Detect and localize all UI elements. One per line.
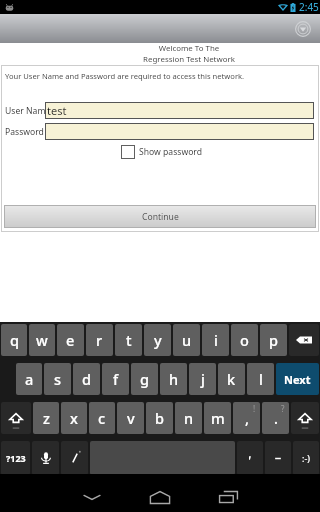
button[interactable]: w <box>29 324 55 356</box>
staticText: l <box>259 369 263 389</box>
button[interactable]: f <box>102 363 129 395</box>
staticText: Password <box>5 126 44 138</box>
staticText: ?123 <box>6 452 26 464</box>
staticText: 2:45 <box>299 0 319 14</box>
button[interactable]: More options <box>295 21 311 37</box>
staticText: test <box>47 103 67 118</box>
staticText: User Name <box>5 105 45 117</box>
button[interactable]: s <box>44 363 71 395</box>
staticText: p <box>269 330 278 350</box>
button[interactable]: Continue <box>4 205 316 228</box>
button[interactable]: y <box>144 324 171 356</box>
staticText: x <box>70 408 78 428</box>
button[interactable]: :-) <box>293 441 319 475</box>
staticText: r <box>96 330 103 350</box>
button[interactable]: Minus <box>265 441 291 475</box>
staticText: m <box>211 408 225 428</box>
button[interactable] <box>45 123 314 140</box>
staticText: Your User Name and Password are required… <box>5 71 245 81</box>
button[interactable]: n <box>175 402 202 434</box>
staticText: h <box>169 369 179 389</box>
button[interactable]: l <box>247 363 274 395</box>
button[interactable]: Back <box>68 474 116 512</box>
button[interactable]: m <box>204 402 231 434</box>
staticText: f <box>113 369 119 389</box>
button[interactable]: Space <box>90 441 235 475</box>
button[interactable]: Shift <box>291 402 319 434</box>
staticText: n <box>184 408 194 428</box>
button[interactable]: t <box>115 324 142 356</box>
button[interactable]: h <box>160 363 187 395</box>
button[interactable]: Backspace <box>289 324 319 356</box>
button[interactable]: ? <box>262 402 289 434</box>
staticText: e <box>66 330 75 350</box>
staticText: d <box>82 369 91 389</box>
staticText: y <box>154 330 162 350</box>
button[interactable]: Shift <box>1 402 31 434</box>
button[interactable]: Show password <box>121 145 203 159</box>
button[interactable]: Voice input <box>32 441 59 475</box>
staticText: ? <box>281 403 285 414</box>
button[interactable]: o <box>231 324 258 356</box>
button[interactable]: c <box>89 402 115 434</box>
staticText: Continue <box>142 211 179 223</box>
button[interactable]: j <box>189 363 216 395</box>
staticText: Show password <box>139 146 203 158</box>
staticText: Welcome To The Regression Test Network <box>143 43 235 65</box>
button[interactable]: g <box>131 363 158 395</box>
button[interactable]: v <box>117 402 144 434</box>
button[interactable]: Slash <box>61 441 88 475</box>
staticText: c <box>98 408 106 428</box>
button[interactable]: Recent apps <box>204 474 252 512</box>
staticText: t <box>126 330 132 350</box>
staticText: k <box>227 369 236 389</box>
staticText: s <box>54 369 62 389</box>
button[interactable]: u <box>173 324 200 356</box>
button[interactable]: Next <box>276 363 319 395</box>
staticText: . <box>274 408 278 428</box>
staticText: :-) <box>302 452 311 464</box>
button[interactable]: a <box>16 363 42 395</box>
button[interactable]: x <box>61 402 87 434</box>
staticText: , <box>245 408 249 428</box>
button[interactable]: test <box>45 102 314 119</box>
button[interactable]: k <box>218 363 245 395</box>
button[interactable]: r <box>86 324 113 356</box>
staticText: u <box>182 330 192 350</box>
button[interactable]: i <box>202 324 229 356</box>
staticText: b <box>155 408 164 428</box>
staticText: j <box>201 369 205 389</box>
button[interactable]: ! <box>233 402 260 434</box>
staticText: ! <box>253 403 256 414</box>
staticText: g <box>140 369 149 389</box>
staticText: v <box>127 408 135 428</box>
staticText: z <box>43 408 50 428</box>
button[interactable]: ?123 <box>1 441 30 475</box>
staticText: Next <box>284 372 311 387</box>
button[interactable]: d <box>73 363 100 395</box>
button[interactable]: Apostrophe <box>237 441 263 475</box>
button[interactable]: z <box>33 402 59 434</box>
staticText: w <box>36 330 48 350</box>
staticText: o <box>240 330 249 350</box>
button[interactable]: q <box>1 324 27 356</box>
button[interactable]: b <box>146 402 173 434</box>
staticText: q <box>10 330 19 350</box>
staticText: i <box>214 330 218 350</box>
button[interactable]: p <box>260 324 287 356</box>
button[interactable]: Home <box>136 474 184 512</box>
staticText: a <box>25 369 34 389</box>
button[interactable]: e <box>57 324 84 356</box>
